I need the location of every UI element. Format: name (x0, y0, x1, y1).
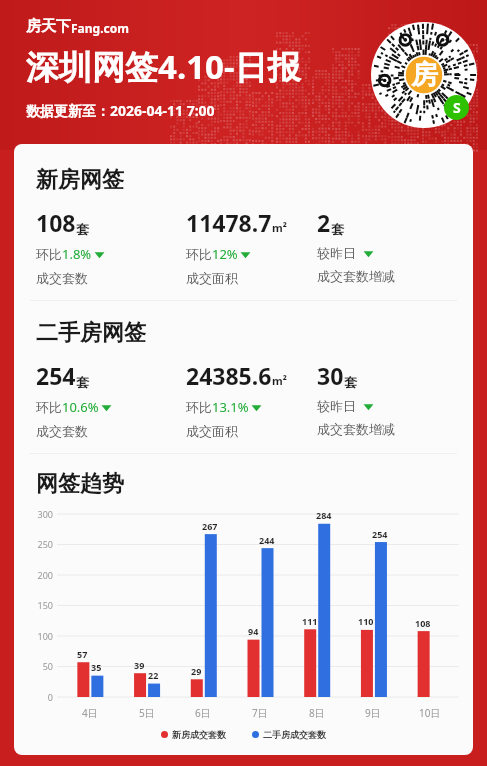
staticText: 111 (302, 615, 318, 627)
staticText: 150 (37, 599, 53, 611)
staticText: 11478.7 (186, 207, 272, 238)
staticText: 套 (331, 221, 344, 237)
button[interactable]: 2 (317, 207, 461, 284)
staticText: 110 (358, 615, 374, 627)
button[interactable]: 108 (36, 207, 186, 286)
staticText: 39 (134, 659, 145, 671)
staticText: 环比 (36, 246, 62, 262)
staticText: 22 (148, 669, 159, 681)
staticText: 4日 (82, 706, 98, 720)
staticText: 108 (36, 207, 76, 238)
button[interactable]: 微信扫码关注二维码 (371, 22, 477, 128)
button[interactable]: 11478.7 (186, 207, 317, 286)
staticText: 30 (317, 360, 344, 391)
staticText: 13.1% (212, 398, 249, 416)
staticText: 1.8% (62, 245, 92, 263)
staticText: 6日 (195, 706, 211, 720)
staticText: 108 (415, 617, 431, 629)
staticText: 较昨日 (317, 398, 356, 414)
staticText: 100 (37, 630, 53, 642)
staticText: 10.6% (62, 398, 99, 416)
staticText: 300 (37, 508, 53, 520)
staticText: 深圳网签4.10-日报 (26, 44, 301, 89)
staticText: 套 (76, 374, 89, 390)
staticText: 5日 (139, 706, 155, 720)
staticText: 254 (36, 360, 76, 391)
staticText: 成交套数增减 (317, 421, 395, 437)
staticText: S (453, 98, 461, 117)
staticText: 50 (42, 660, 53, 672)
staticText: 24385.6 (186, 360, 272, 391)
staticText: 房 (411, 58, 438, 92)
staticText: 房天下 (26, 17, 71, 36)
staticText: 2 (317, 207, 331, 238)
staticText: 267 (202, 520, 218, 532)
staticText: 二手房网签 (36, 319, 146, 347)
staticText: 套 (76, 221, 89, 237)
staticText: m² (272, 373, 287, 388)
staticText: 二手房成交套数 (263, 729, 326, 740)
staticText: 环比 (186, 246, 212, 262)
staticText: 环比 (186, 399, 212, 415)
button[interactable]: 24385.6 (186, 360, 317, 439)
staticText: 环比 (36, 399, 62, 415)
staticText: 0 (47, 691, 53, 703)
staticText: 8日 (309, 706, 325, 720)
staticText: 成交套数 (36, 423, 88, 439)
staticText: 新房网签 (36, 166, 124, 194)
staticText: 57 (77, 648, 88, 660)
button[interactable]: 254 (36, 360, 186, 439)
staticText: 成交面积 (186, 270, 238, 286)
staticText: 284 (316, 509, 332, 521)
staticText: 200 (37, 569, 53, 581)
staticText: 成交套数增减 (317, 268, 395, 284)
staticText: 9日 (365, 706, 381, 720)
staticText: 7日 (252, 706, 268, 720)
staticText: 成交套数 (36, 270, 88, 286)
button[interactable]: 30 (317, 360, 461, 437)
staticText: 244 (259, 534, 275, 546)
staticText: 数据更新至：2026-04-11 7:00 (26, 101, 215, 120)
staticText: 10日 (419, 706, 441, 720)
staticText: Fang.com (71, 20, 129, 36)
staticText: 12% (212, 245, 238, 263)
staticText: m² (272, 220, 287, 235)
staticText: 254 (372, 528, 388, 540)
staticText: 94 (248, 625, 259, 637)
staticText: 成交面积 (186, 423, 238, 439)
staticText: 网签趋势 (36, 470, 124, 498)
staticText: 较昨日 (317, 245, 356, 261)
staticText: 29 (191, 665, 202, 677)
staticText: 套 (344, 374, 357, 390)
staticText: 35 (91, 661, 102, 673)
staticText: 新房成交套数 (172, 729, 226, 740)
staticText: 250 (37, 538, 53, 550)
